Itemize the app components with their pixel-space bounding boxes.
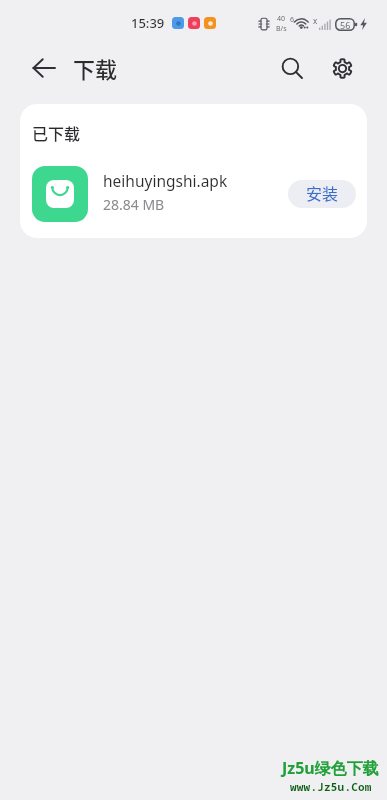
staticText: 6: [290, 15, 295, 25]
staticText: 28.84 MB: [103, 195, 165, 214]
staticText: heihuyingshi.apk: [103, 170, 228, 191]
button[interactable]: 安装: [288, 180, 356, 208]
button[interactable]: Back: [20, 50, 68, 86]
staticText: 下载: [73, 52, 118, 84]
staticText: Jz5u绿色下载: [282, 757, 379, 779]
staticText: x: [313, 15, 318, 26]
button[interactable]: heihuyingshi.apk: [20, 163, 367, 225]
staticText: 40: [277, 14, 286, 24]
button[interactable]: Settings: [322, 50, 362, 86]
staticText: 已下载: [32, 121, 81, 144]
button[interactable]: Search: [272, 50, 312, 86]
staticText: 15:39: [131, 14, 165, 32]
staticText: 安装: [306, 181, 339, 204]
staticText: B/s: [276, 24, 287, 34]
staticText: www.Jz5u.Com: [290, 779, 372, 794]
staticText: 56: [340, 19, 351, 31]
